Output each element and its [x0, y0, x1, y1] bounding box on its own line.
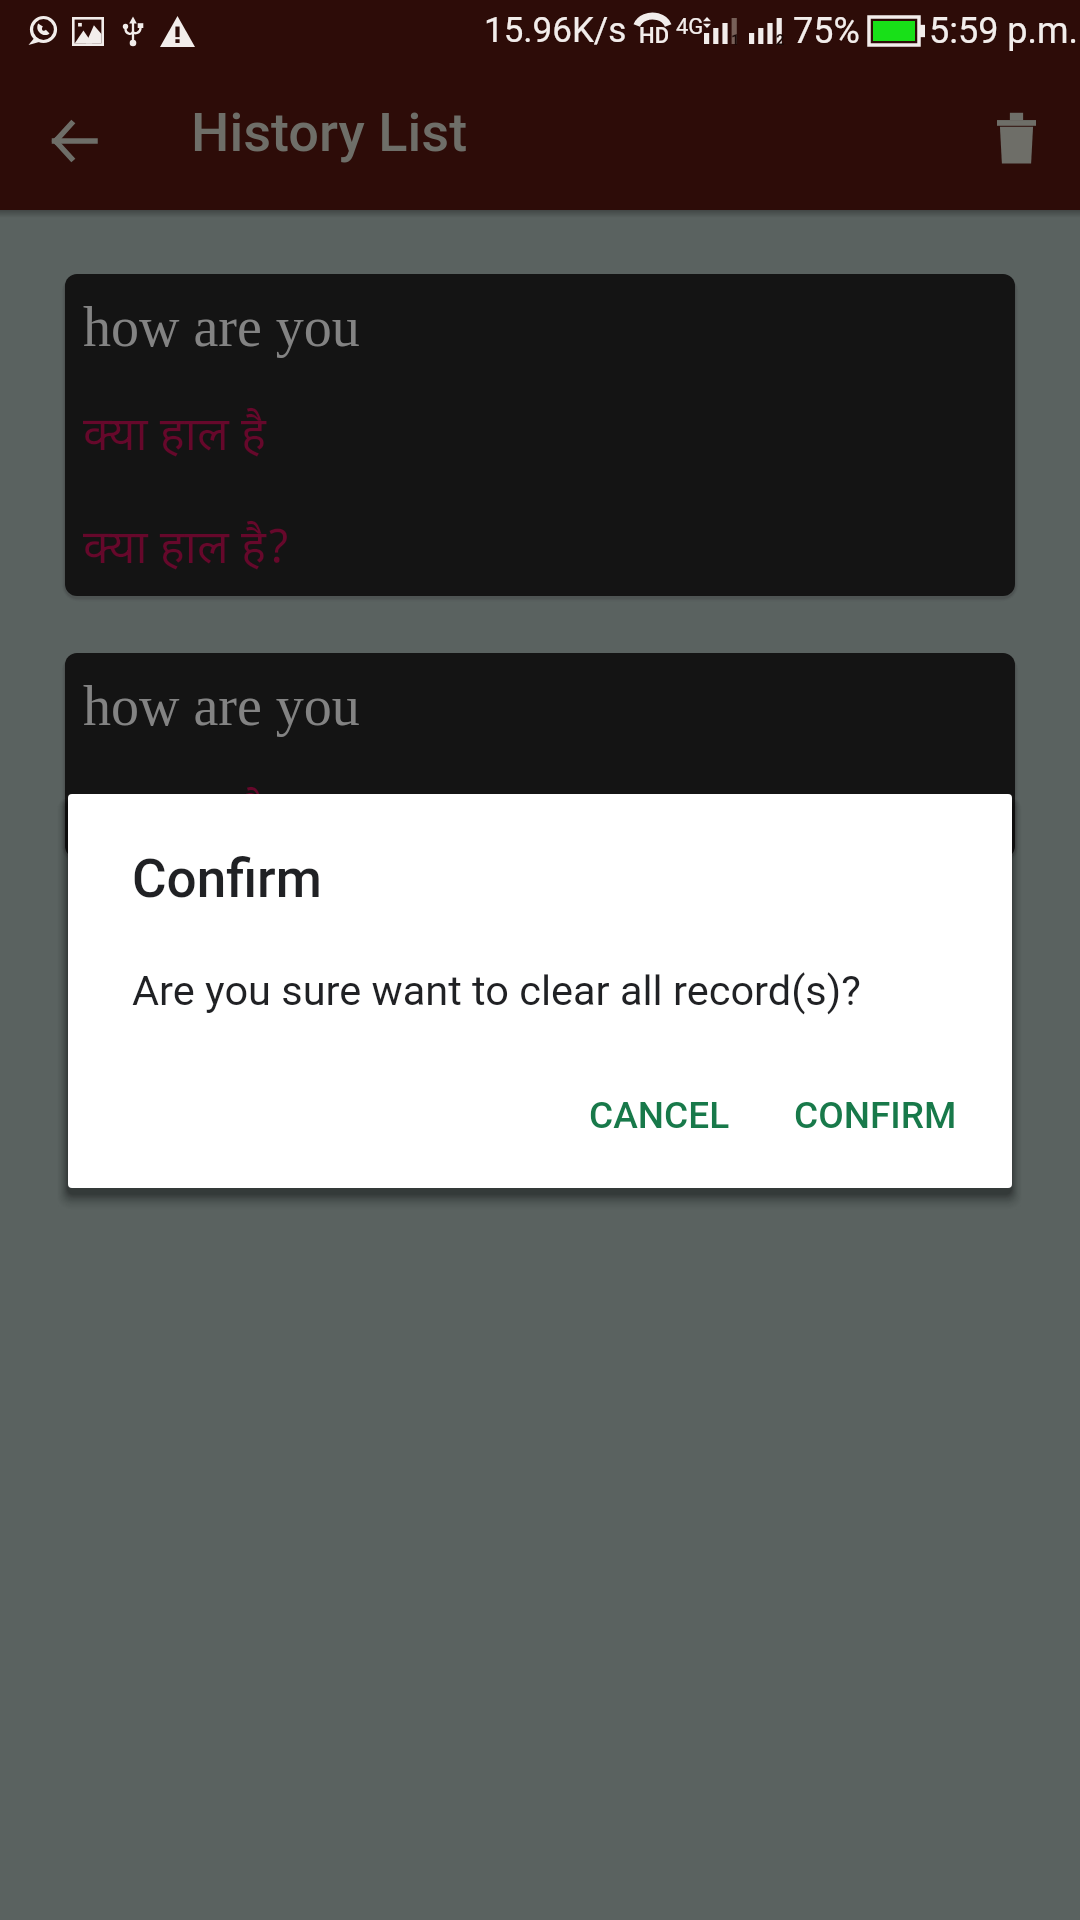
button[interactable]: CONFIRM: [776, 1078, 975, 1153]
staticText: 1: [731, 31, 740, 49]
staticText: 2: [776, 31, 785, 49]
button[interactable]: Delete all: [968, 93, 1064, 189]
button[interactable]: how are you: [65, 653, 1015, 858]
staticText: क्या हाल है: [83, 787, 266, 848]
staticText: क्या हाल है?: [83, 521, 291, 582]
button[interactable]: how are you: [65, 274, 1015, 596]
staticText: CANCEL: [589, 1094, 730, 1137]
staticText: 75%: [793, 10, 860, 52]
staticText: how are you: [83, 675, 360, 737]
staticText: how are you: [83, 296, 360, 358]
staticText: History List: [191, 101, 468, 164]
staticText: HD: [639, 23, 670, 49]
other: USB: [120, 16, 146, 47]
staticText: 4G: [676, 14, 704, 40]
staticText: 5:59 p.m.: [929, 10, 1079, 52]
button[interactable]: Back: [26, 93, 122, 189]
staticText: CONFIRM: [794, 1094, 957, 1137]
staticText: Are you sure want to clear all record(s)…: [132, 966, 861, 1015]
other: Warning: [160, 16, 195, 47]
staticText: Confirm: [132, 848, 322, 910]
button[interactable]: CANCEL: [571, 1078, 748, 1153]
other: Screenshot: [72, 17, 104, 46]
staticText: 15.96K/s: [484, 10, 627, 51]
other: WhatsApp: [29, 16, 58, 46]
staticText: क्या हाल है: [83, 408, 266, 469]
